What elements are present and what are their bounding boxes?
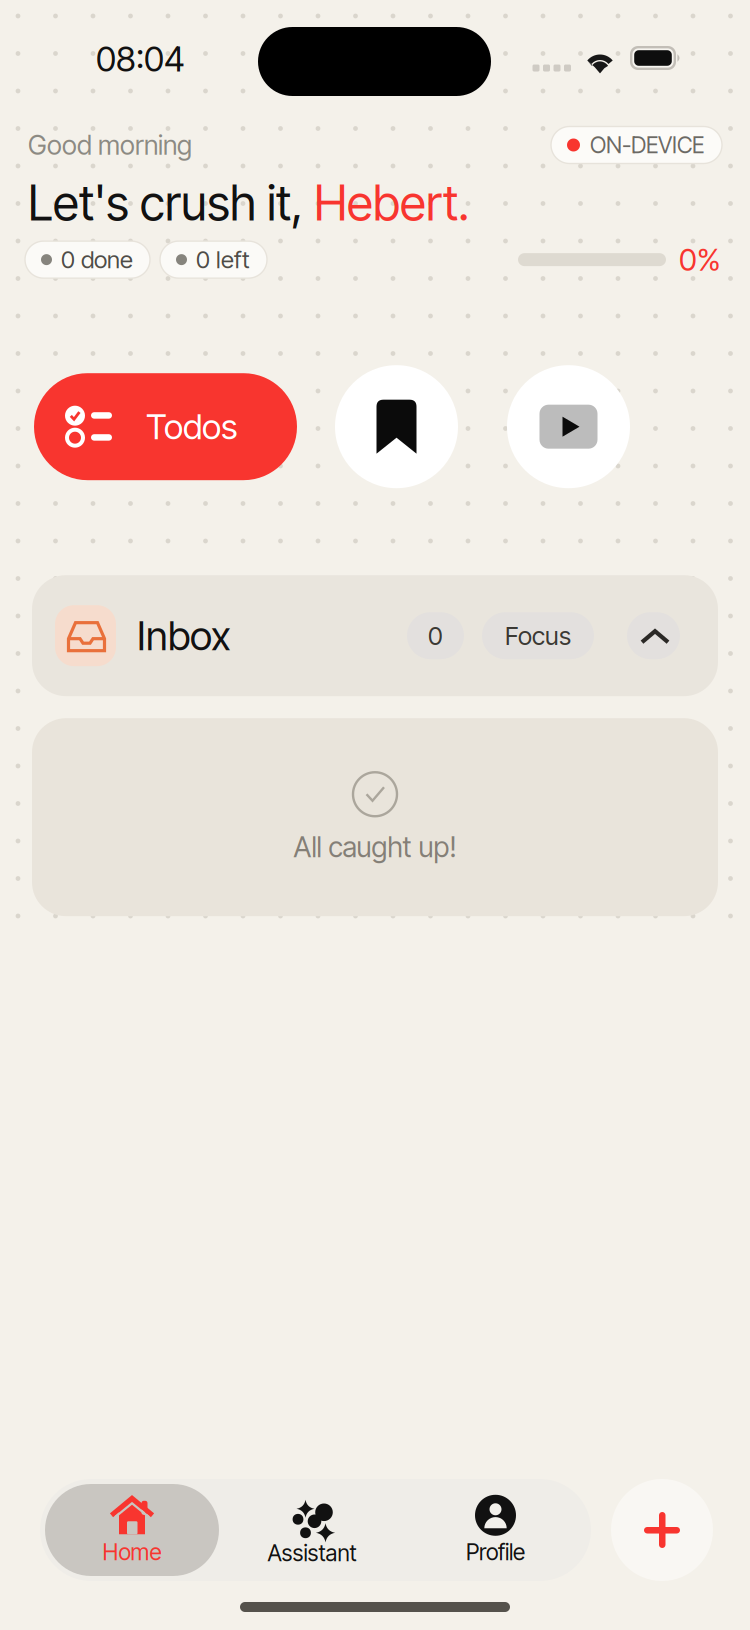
staticText: 0 done — [61, 245, 133, 274]
button[interactable]: Todos — [34, 373, 297, 480]
staticText: Hebert. — [314, 174, 469, 232]
staticText: ON-DEVICE — [590, 131, 704, 159]
staticText: Profile — [466, 1538, 525, 1566]
button[interactable]: Videos — [507, 365, 630, 488]
button[interactable]: Profile — [405, 1484, 586, 1576]
button[interactable]: Home — [45, 1484, 219, 1576]
staticText: Todos — [146, 406, 237, 448]
button[interactable]: Bookmarks — [335, 365, 458, 488]
staticText: 08:04 — [96, 38, 185, 80]
staticText: All caught up! — [293, 830, 456, 864]
button[interactable]: Assistant — [219, 1484, 405, 1576]
staticText: Assistant — [267, 1539, 356, 1567]
staticText: Good morning — [28, 129, 192, 161]
staticText: 0 — [428, 620, 443, 651]
button[interactable]: Inbox — [32, 575, 718, 696]
staticText: Focus — [505, 620, 571, 651]
button[interactable]: ON-DEVICE — [551, 126, 722, 163]
staticText: 0 left — [196, 245, 250, 274]
button[interactable]: Add — [611, 1479, 713, 1581]
staticText: 0% — [679, 241, 720, 278]
staticText: Let's crush it, — [28, 174, 314, 232]
staticText: Home — [102, 1538, 161, 1566]
staticText: Inbox — [137, 611, 231, 660]
